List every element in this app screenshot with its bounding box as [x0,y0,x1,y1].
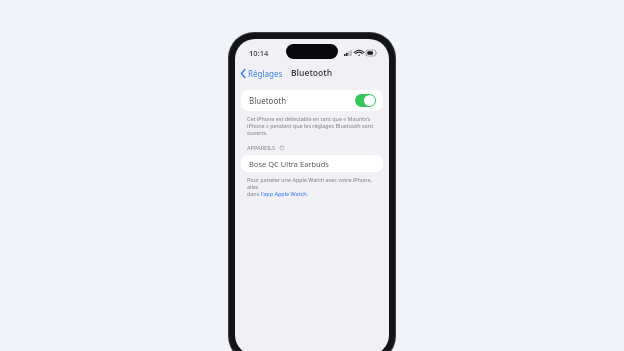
staticText: Réglages [248,68,283,79]
staticText: Bose QC Ultra Earbuds [249,159,329,169]
staticText: APPAREILS [247,144,276,152]
button[interactable]: Bose QC Ultra Earbuds [241,155,383,172]
button[interactable]: Bluetooth on [355,94,376,107]
button[interactable]: Bluetooth [241,90,383,111]
staticText: dans [247,190,261,197]
staticText: 10:14 [249,48,269,58]
staticText: Bluetooth [249,95,287,106]
staticText: Pour jumeler une Apple Watch avec votre … [247,176,377,190]
staticText: l’app Apple Watch [261,190,307,197]
button[interactable]: Réglages [235,66,289,81]
staticText: Cet iPhone est détectable en tant que « … [247,115,377,136]
staticText: Bluetooth [291,67,333,79]
staticText: . [307,190,309,197]
button[interactable]: l’app Apple Watch [261,190,307,197]
